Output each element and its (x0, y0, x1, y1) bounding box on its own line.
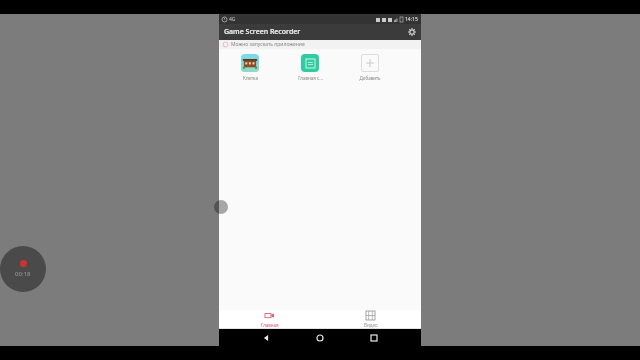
button[interactable]: Recents (367, 331, 381, 345)
button[interactable]: Видео (320, 310, 421, 328)
button[interactable]: Back (259, 331, 273, 345)
button[interactable]: Settings (406, 26, 418, 38)
staticText: 4G (229, 16, 236, 23)
staticText: 00:18 (15, 270, 31, 278)
staticText: Добавить (359, 75, 381, 81)
button[interactable]: Главная с... (293, 54, 327, 81)
staticText: Видео (364, 322, 378, 328)
button[interactable]: Главная (219, 310, 320, 328)
button[interactable]: Можно запускать приложение (219, 40, 421, 49)
other: Add app (361, 54, 379, 72)
staticText: Главная с... (298, 75, 323, 81)
button[interactable]: Recording timer (0, 246, 46, 292)
staticText: Можно запускать приложение (231, 41, 305, 48)
button[interactable]: Клетка (233, 54, 267, 81)
staticText: Главная (261, 322, 279, 328)
staticText: Game Screen Recorder (224, 27, 301, 37)
button[interactable]: Home (313, 331, 327, 345)
button[interactable]: Recorder handle (214, 200, 228, 214)
button[interactable]: Add app (353, 54, 387, 81)
staticText: Клетка (243, 75, 258, 81)
staticText: 14:15 (405, 16, 418, 23)
